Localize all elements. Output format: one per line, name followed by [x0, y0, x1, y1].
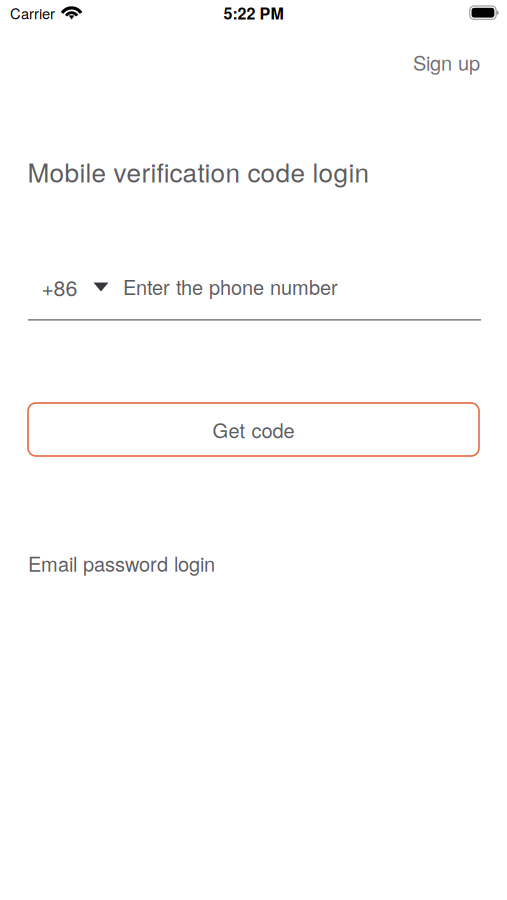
staticText: Get code [212, 415, 294, 444]
staticText: Enter the phone number [123, 272, 338, 301]
button[interactable]: Sign up [392, 43, 480, 81]
staticText: +86 [41, 272, 77, 302]
button[interactable]: Get code [28, 403, 479, 456]
button[interactable]: Email password login [28, 544, 238, 582]
button[interactable]: +86 [41, 267, 127, 307]
staticText: Email password login [28, 549, 215, 577]
staticText: Sign up [413, 48, 480, 76]
staticText: 5:22 PM [223, 1, 283, 24]
staticText: Mobile verification code login [27, 152, 369, 190]
staticText: Carrier [10, 2, 55, 23]
